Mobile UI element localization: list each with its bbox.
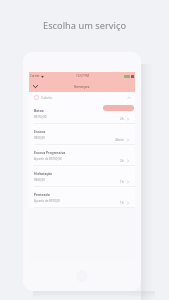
staticText: 2h [120,117,124,121]
staticText: 45min [115,138,124,142]
staticText: A partir de R$70,00 [34,199,60,203]
staticText: Cabelo [41,95,53,100]
staticText: Escova [34,129,46,134]
button[interactable]: Escova [29,124,135,145]
button[interactable]: Penteado [29,187,135,208]
button[interactable] [103,105,134,111]
staticText: R$150,00 [34,115,47,119]
staticText: R$50,00 [34,136,45,140]
button[interactable]: Cabelo [29,92,135,103]
staticText: Serviços [74,84,90,89]
staticText: A partir de R$150,00 [34,157,62,161]
button[interactable]: Hidratação [29,166,135,187]
button[interactable]: Escova Progressiva [29,145,135,166]
staticText: 1h [120,180,124,184]
button[interactable]: Fechar [31,82,40,91]
staticText: Carrier [30,74,40,78]
staticText: Escolha um serviço [0,19,169,32]
staticText: 1h [120,201,124,205]
button[interactable]: Botox [29,103,135,124]
staticText: R$60,00 [34,178,45,182]
staticText: Penteado [34,192,50,197]
staticText: Escova Progressiva [34,150,66,155]
staticText: Botox [34,108,44,113]
staticText: Hidratação [34,171,53,176]
staticText: 2h [120,159,124,163]
staticText: 12:57 PM [76,74,89,78]
